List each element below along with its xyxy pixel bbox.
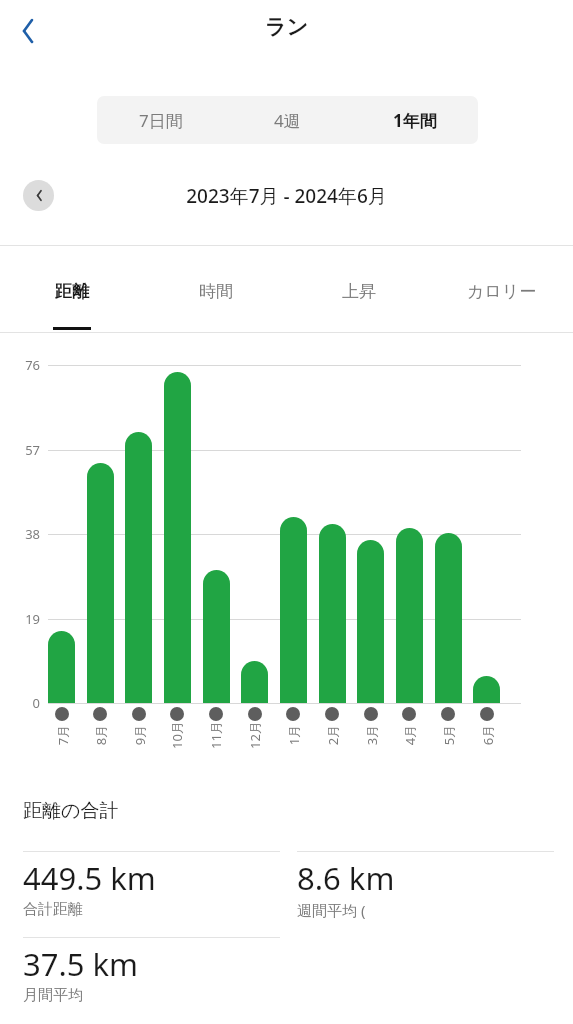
staticText: 0	[4, 694, 40, 712]
button[interactable]	[125, 432, 152, 703]
staticText: 8月	[91, 724, 109, 745]
staticText: 76	[4, 356, 40, 374]
staticText: 7日間	[139, 109, 183, 132]
staticText: 4週	[274, 109, 301, 132]
button[interactable]	[203, 570, 230, 703]
button[interactable]	[87, 463, 114, 703]
button[interactable]: 7日間	[97, 96, 224, 144]
button[interactable]	[473, 676, 500, 703]
staticText: 4月	[400, 724, 418, 745]
staticText: 38	[4, 525, 40, 543]
button[interactable]: 4週	[224, 96, 351, 144]
staticText: 57	[4, 441, 40, 459]
button[interactable]	[48, 631, 75, 703]
button[interactable]: 37.5 km	[23, 943, 280, 1005]
staticText: 時間	[199, 281, 233, 302]
staticText: 37.5 km	[23, 943, 139, 985]
staticText: 距離の合計	[23, 799, 119, 823]
staticText: 週間平均 (	[297, 900, 366, 920]
button[interactable]: Previous period	[23, 180, 54, 211]
staticText: 1月	[284, 724, 302, 745]
button[interactable]	[241, 661, 268, 703]
staticText: 10月	[168, 721, 186, 749]
button[interactable]: 1年間	[351, 96, 478, 144]
staticText: 2月	[323, 724, 341, 745]
staticText: 11月	[207, 721, 225, 749]
staticText: 合計距離	[23, 900, 83, 919]
button[interactable]: 時間	[144, 262, 287, 332]
staticText: 12月	[246, 721, 264, 749]
button[interactable]: カロリー	[430, 262, 573, 332]
button[interactable]	[396, 528, 423, 703]
staticText: 6月	[478, 724, 496, 745]
staticText: 19	[4, 610, 40, 628]
staticText: 8.6 km	[297, 857, 395, 899]
button[interactable]: Back	[4, 6, 54, 56]
staticText: ラン	[0, 14, 573, 40]
staticText: 9月	[130, 724, 148, 745]
staticText: カロリー	[467, 281, 537, 302]
button[interactable]: 449.5 km	[23, 857, 280, 919]
staticText: 2023年7月 - 2024年6月	[0, 183, 573, 209]
staticText: 3月	[362, 724, 380, 745]
staticText: 距離	[55, 281, 89, 302]
button[interactable]: 上昇	[287, 262, 430, 332]
button[interactable]	[357, 540, 384, 703]
button[interactable]	[164, 372, 191, 703]
staticText: 上昇	[342, 281, 376, 302]
button[interactable]	[280, 517, 307, 703]
button[interactable]: 8.6 km	[297, 857, 554, 920]
staticText: 449.5 km	[23, 857, 156, 899]
staticText: 5月	[439, 724, 457, 745]
button[interactable]: 距離	[0, 262, 144, 332]
staticText: 1年間	[393, 109, 437, 132]
staticText: 7月	[53, 724, 71, 745]
staticText: 月間平均	[23, 986, 83, 1005]
button[interactable]	[319, 524, 346, 703]
button[interactable]	[435, 533, 462, 703]
